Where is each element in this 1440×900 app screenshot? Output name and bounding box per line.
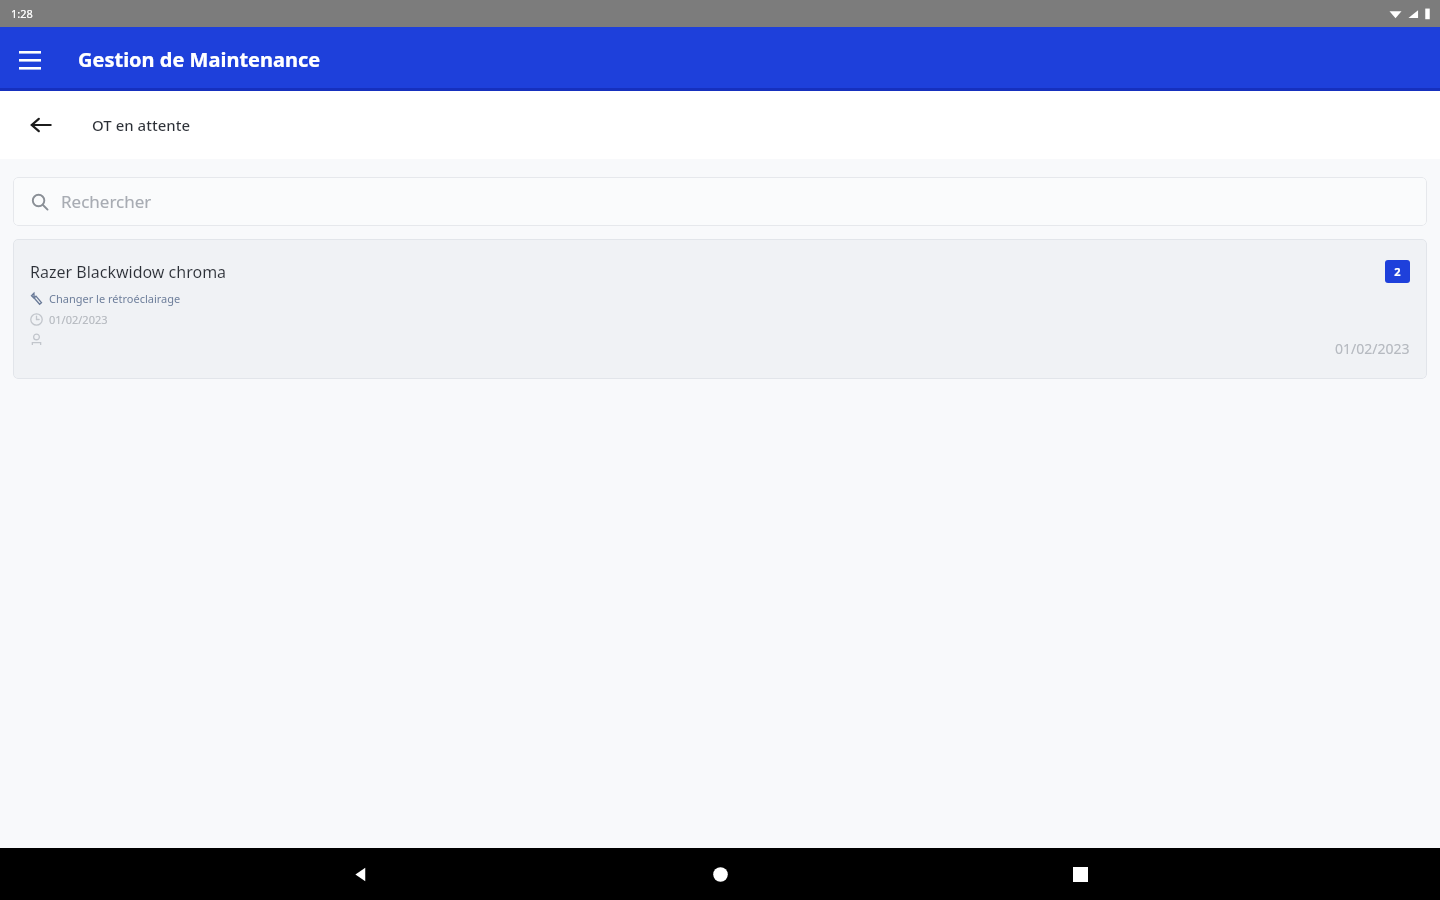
button[interactable]: Home [540,848,900,900]
staticText: 2 [1394,264,1401,279]
staticText: Razer Blackwidow chroma [30,261,227,283]
button[interactable]: Back [180,848,540,900]
button[interactable]: Razer Blackwidow chroma [13,239,1427,379]
button[interactable]: 2 [1385,260,1410,283]
staticText: Rechercher [61,190,152,213]
staticText: Gestion de Maintenance [78,46,321,73]
staticText: 01/02/2023 [49,312,108,327]
button[interactable]: Rechercher [13,177,1427,226]
button[interactable]: Recent apps [900,848,1260,900]
button[interactable]: Back [20,104,62,146]
button[interactable]: Open navigation menu [8,37,52,81]
staticText: 01/02/2023 [1335,339,1410,358]
staticText: OT en attente [92,115,190,135]
staticText: Changer le rétroéclairage [49,291,181,306]
staticText: 1:28 [11,6,33,21]
